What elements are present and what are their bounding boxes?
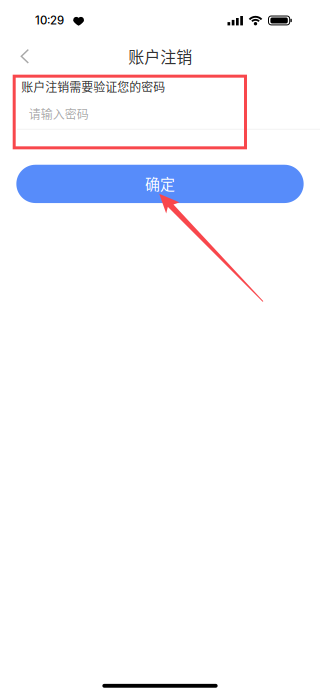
staticText: 请输入密码 <box>29 105 89 122</box>
staticText: 账户注销需要验证您的密码 <box>21 78 165 95</box>
staticText: 账户注销 <box>128 44 192 68</box>
staticText: 10:29 <box>35 13 64 27</box>
button[interactable]: 确定 <box>16 165 304 203</box>
button[interactable]: 返回 <box>4 35 46 77</box>
staticText: 确定 <box>145 172 175 194</box>
